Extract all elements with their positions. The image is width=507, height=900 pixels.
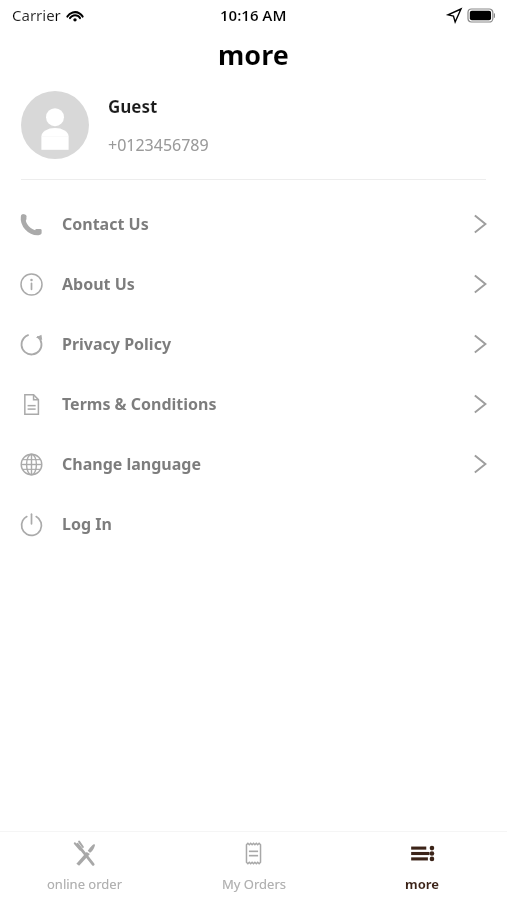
other: more bbox=[409, 840, 436, 867]
staticText: Change language bbox=[62, 453, 201, 475]
staticText: online order bbox=[47, 875, 123, 893]
staticText: more bbox=[218, 36, 289, 73]
other: About Us bbox=[20, 273, 43, 296]
button[interactable]: online order bbox=[0, 832, 169, 900]
staticText: more bbox=[405, 875, 440, 893]
button[interactable]: more bbox=[338, 832, 507, 900]
button[interactable]: My Orders bbox=[169, 832, 338, 900]
other: Change language bbox=[20, 453, 43, 476]
button[interactable]: Log In bbox=[0, 494, 507, 554]
staticText: Contact Us bbox=[62, 213, 149, 235]
staticText: +0123456789 bbox=[108, 134, 209, 156]
button[interactable]: Terms & Conditions bbox=[0, 374, 507, 434]
other: My Orders bbox=[240, 840, 267, 867]
button[interactable]: Contact Us bbox=[0, 194, 507, 254]
other: Contact Us bbox=[20, 213, 43, 236]
other: Terms & Conditions bbox=[20, 393, 43, 416]
staticText: Privacy Policy bbox=[62, 333, 172, 355]
staticText: About Us bbox=[62, 273, 135, 295]
staticText: Terms & Conditions bbox=[62, 393, 217, 415]
button[interactable]: Privacy Policy bbox=[0, 314, 507, 374]
other: Privacy Policy bbox=[20, 333, 43, 356]
staticText: 10:16 AM bbox=[220, 5, 287, 25]
other: online order bbox=[71, 840, 98, 867]
staticText: My Orders bbox=[222, 875, 286, 893]
staticText: Guest bbox=[108, 95, 158, 118]
button[interactable]: Change language bbox=[0, 434, 507, 494]
staticText: Log In bbox=[62, 513, 112, 535]
staticText: Carrier bbox=[12, 5, 61, 25]
other: Log In bbox=[20, 513, 43, 536]
button[interactable]: About Us bbox=[0, 254, 507, 314]
